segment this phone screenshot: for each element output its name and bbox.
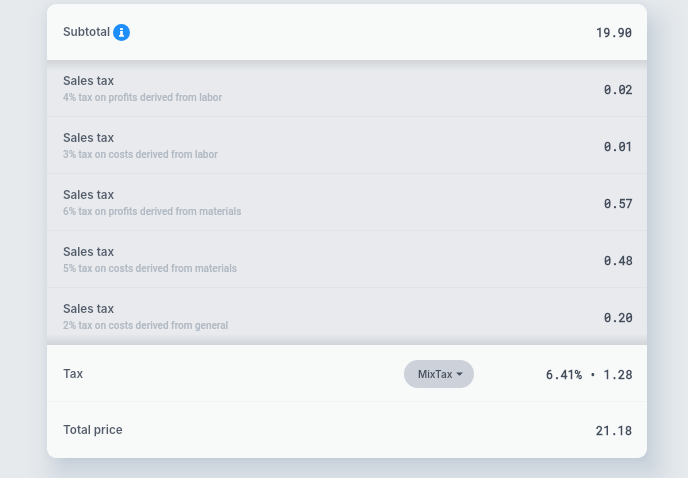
- staticText: 2% tax on costs derived from general: [63, 320, 229, 332]
- button[interactable]: Sales tax: [47, 60, 647, 117]
- staticText: Sales tax: [63, 188, 115, 202]
- staticText: Sales tax: [63, 74, 115, 88]
- staticText: Tax: [63, 367, 84, 381]
- staticText: 0.20: [604, 309, 633, 325]
- staticText: 19.90: [596, 24, 633, 40]
- staticText: Sales tax: [63, 245, 115, 259]
- staticText: 4% tax on profits derived from labor: [63, 92, 223, 104]
- staticText: 5% tax on costs derived from materials: [63, 263, 237, 275]
- button[interactable]: Sales tax: [47, 288, 647, 345]
- staticText: 0.01: [604, 138, 633, 154]
- button[interactable]: Sales tax: [47, 117, 647, 174]
- staticText: Sales tax: [63, 131, 115, 145]
- button[interactable]: Subtotal: [47, 4, 647, 60]
- button[interactable]: Total price: [47, 402, 647, 458]
- staticText: Total price: [63, 423, 123, 437]
- staticText: MixTax: [418, 368, 453, 380]
- staticText: 0.48: [604, 252, 633, 268]
- button[interactable]: Sales tax: [47, 231, 647, 288]
- staticText: 6.41% • 1.28: [546, 366, 633, 382]
- button[interactable]: Sales tax: [47, 174, 647, 231]
- button[interactable]: MixTax: [404, 360, 474, 388]
- button[interactable]: More information about subtotal: [113, 24, 130, 41]
- staticText: 6% tax on profits derived from materials: [63, 206, 242, 218]
- button[interactable]: Tax: [47, 345, 647, 402]
- staticText: 21.18: [596, 422, 633, 438]
- staticText: 3% tax on costs derived from labor: [63, 149, 218, 161]
- staticText: Sales tax: [63, 302, 115, 316]
- staticText: Subtotal: [63, 25, 111, 39]
- staticText: 0.57: [604, 195, 633, 211]
- staticText: 0.02: [604, 81, 633, 97]
